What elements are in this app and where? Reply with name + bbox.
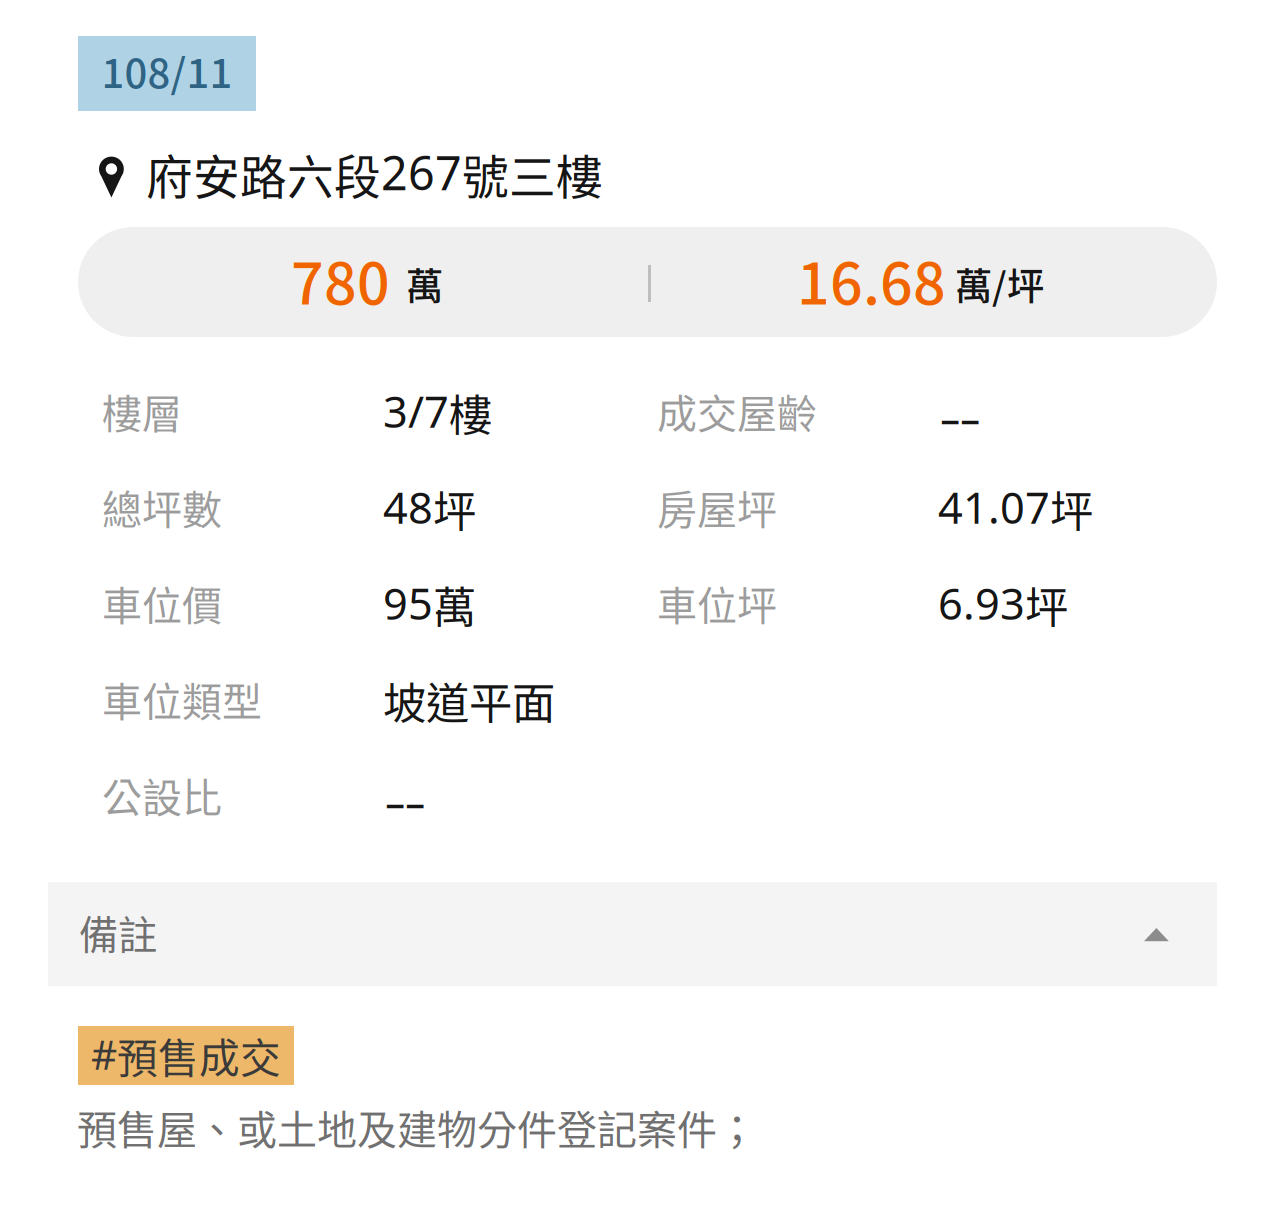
staticText: 萬 [406, 257, 443, 311]
staticText: 108/11 [101, 41, 232, 99]
staticText: –– [940, 390, 980, 444]
staticText: 車位類型 [102, 670, 262, 728]
staticText: 總坪數 [102, 478, 222, 536]
staticText: 成交屋齡 [657, 382, 817, 440]
staticText: 6.93坪 [938, 573, 1068, 636]
staticText: 備註 [79, 904, 157, 961]
staticText: 公設比 [102, 766, 222, 824]
staticText: 車位價 [102, 574, 222, 632]
staticText: 48坪 [383, 477, 476, 540]
staticText: 95萬 [383, 573, 476, 636]
staticText: 780 [291, 238, 390, 321]
staticText: 預售屋、或土地及建物分件登記案件； [77, 1098, 757, 1156]
staticText: #預售成交 [91, 1026, 281, 1085]
staticText: 萬/坪 [955, 257, 1044, 311]
staticText: 坡道平面 [383, 669, 555, 732]
staticText: 房屋坪 [657, 478, 777, 536]
staticText: 41.07坪 [938, 477, 1093, 540]
button[interactable]: 備註 [48, 882, 1217, 986]
staticText: –– [385, 774, 425, 828]
staticText: 3/7樓 [383, 381, 492, 444]
staticText: 車位坪 [657, 574, 777, 632]
staticText: 府安路六段267號三樓 [146, 140, 603, 208]
button[interactable]: #預售成交 [78, 1026, 294, 1085]
button[interactable]: 府安路六段267號三樓 [99, 150, 619, 204]
staticText: 樓層 [102, 382, 182, 440]
staticText: 16.68 [797, 238, 946, 321]
